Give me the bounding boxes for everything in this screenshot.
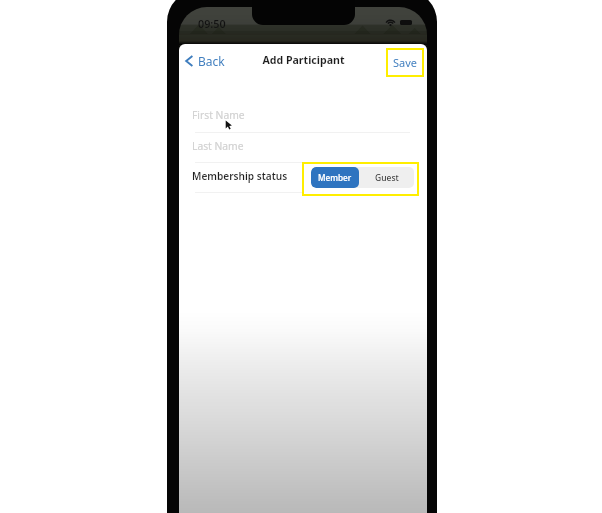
staticText: Save [393,55,418,70]
button[interactable]: Back [182,48,228,74]
button[interactable]: Save [388,50,422,75]
staticText: Guest [375,172,399,184]
staticText: Last Name [192,139,244,153]
staticText: Back [198,53,225,69]
button[interactable]: Member [311,167,359,188]
button[interactable]: Last Name [179,133,427,162]
staticText: Add Participant [262,53,345,67]
staticText: 09:50 [198,16,226,31]
button[interactable]: Guest [359,167,414,188]
button[interactable]: First Name [179,102,427,132]
other: Wi-Fi [385,19,396,26]
staticText: First Name [192,108,245,122]
other: Battery [400,20,412,25]
staticText: Member [318,172,352,183]
staticText: Membership status [192,169,288,183]
